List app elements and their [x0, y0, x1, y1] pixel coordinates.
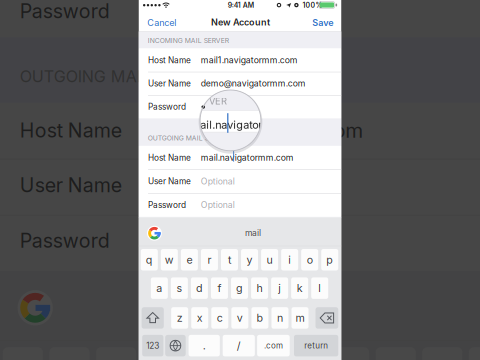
- button[interactable]: h: [251, 277, 268, 299]
- staticText: a: [156, 282, 162, 295]
- button[interactable]: x: [191, 307, 208, 329]
- staticText: n: [277, 311, 283, 324]
- button[interactable]: Google search: [143, 222, 165, 244]
- button[interactable]: z: [171, 307, 188, 329]
- button[interactable]: Shift: [142, 307, 164, 329]
- staticText: g: [236, 282, 243, 295]
- staticText: Password: [20, 229, 110, 252]
- staticText: OUTGOING MAIL SERVER: [148, 134, 230, 142]
- staticText: demo@navigatormm.com: [201, 78, 306, 89]
- staticText: INCOMING MAIL SERVER: [148, 36, 229, 45]
- staticText: w: [165, 253, 174, 266]
- button[interactable]: n: [271, 307, 288, 329]
- button[interactable]: a: [151, 277, 168, 299]
- button[interactable]: v: [231, 307, 248, 329]
- staticText: .com: [264, 341, 283, 350]
- staticText: y: [247, 253, 253, 266]
- staticText: j: [278, 282, 281, 295]
- button[interactable]: Delete: [315, 307, 338, 329]
- button[interactable]: 123: [142, 335, 163, 356]
- staticText: e: [186, 253, 192, 266]
- staticText: User Name: [148, 78, 191, 88]
- button[interactable]: k: [291, 277, 308, 299]
- staticText: l: [318, 282, 321, 295]
- staticText: 100%: [303, 1, 323, 9]
- staticText: return: [304, 341, 328, 350]
- staticText: p: [326, 253, 333, 266]
- button[interactable]: w: [161, 249, 178, 270]
- button[interactable]: c: [211, 307, 228, 329]
- button[interactable]: q: [141, 249, 158, 270]
- staticText: User Name: [148, 176, 191, 186]
- staticText: Password: [20, 0, 110, 23]
- staticText: 123: [146, 341, 159, 351]
- button[interactable]: s: [171, 277, 188, 299]
- button[interactable]: f: [211, 277, 228, 299]
- staticText: mail.navigatormm.com: [201, 152, 294, 163]
- staticText: b: [256, 311, 263, 324]
- staticText: mail.navigatormm.com: [145, 118, 363, 143]
- staticText: z: [177, 311, 183, 324]
- staticText: x: [197, 311, 203, 324]
- button[interactable]: i: [281, 249, 298, 270]
- button[interactable]: Save: [293, 12, 333, 33]
- staticText: ail.navigator: [200, 118, 262, 131]
- staticText: /: [237, 339, 241, 352]
- button[interactable]: Host Name: [139, 146, 341, 169]
- button[interactable]: b: [251, 307, 268, 329]
- staticText: mail: [245, 228, 261, 238]
- staticText: q: [146, 253, 153, 266]
- staticText: Password: [148, 200, 186, 210]
- staticText: c: [217, 311, 223, 324]
- button[interactable]: u: [261, 249, 278, 270]
- button[interactable]: y: [241, 249, 258, 270]
- staticText: New Account: [211, 17, 270, 28]
- button[interactable]: Password: [139, 95, 341, 118]
- staticText: u: [267, 253, 273, 266]
- button[interactable]: o: [301, 249, 318, 270]
- staticText: Host Name: [20, 118, 122, 142]
- button[interactable]: j: [271, 277, 288, 299]
- button[interactable]: g: [231, 277, 248, 299]
- staticText: Host Name: [148, 55, 191, 65]
- staticText: mail1.navigatormm.com: [201, 55, 298, 65]
- button[interactable]: p: [321, 249, 338, 270]
- staticText: User Name: [20, 173, 122, 197]
- staticText: Password: [148, 102, 186, 112]
- button[interactable]: Cancel: [147, 12, 193, 33]
- staticText: 9:41 AM: [228, 1, 254, 9]
- staticText: i: [288, 253, 291, 266]
- staticText: k: [297, 282, 303, 295]
- staticText: r: [207, 253, 211, 266]
- staticText: f: [217, 282, 221, 295]
- staticText: Save: [312, 17, 333, 28]
- button[interactable]: User Name: [139, 169, 341, 193]
- staticText: h: [257, 282, 263, 295]
- button[interactable]: Password: [139, 193, 341, 217]
- staticText: m: [295, 311, 304, 324]
- button[interactable]: Switch keyboard: [165, 335, 186, 356]
- button[interactable]: .: [189, 335, 220, 356]
- button[interactable]: /: [223, 335, 255, 356]
- staticText: Optional: [201, 176, 235, 187]
- button[interactable]: User Name: [139, 72, 341, 95]
- button[interactable]: e: [181, 249, 198, 270]
- button[interactable]: m: [291, 307, 308, 329]
- button[interactable]: .com: [257, 335, 290, 356]
- staticText: VER: [209, 96, 227, 107]
- button[interactable]: l: [311, 277, 328, 299]
- staticText: o: [307, 253, 313, 266]
- staticText: .: [203, 339, 206, 352]
- staticText: OUTGOING MAIL SERVER: [20, 67, 216, 86]
- staticText: d: [196, 282, 203, 295]
- staticText: v: [237, 311, 243, 324]
- staticText: Cancel: [147, 17, 176, 28]
- button[interactable]: r: [201, 249, 218, 270]
- button[interactable]: mail: [223, 223, 283, 243]
- staticText: Host Name: [148, 153, 191, 163]
- staticText: t: [228, 253, 231, 266]
- button[interactable]: Host Name: [139, 48, 341, 72]
- button[interactable]: return: [294, 335, 338, 356]
- button[interactable]: t: [221, 249, 238, 270]
- button[interactable]: d: [191, 277, 208, 299]
